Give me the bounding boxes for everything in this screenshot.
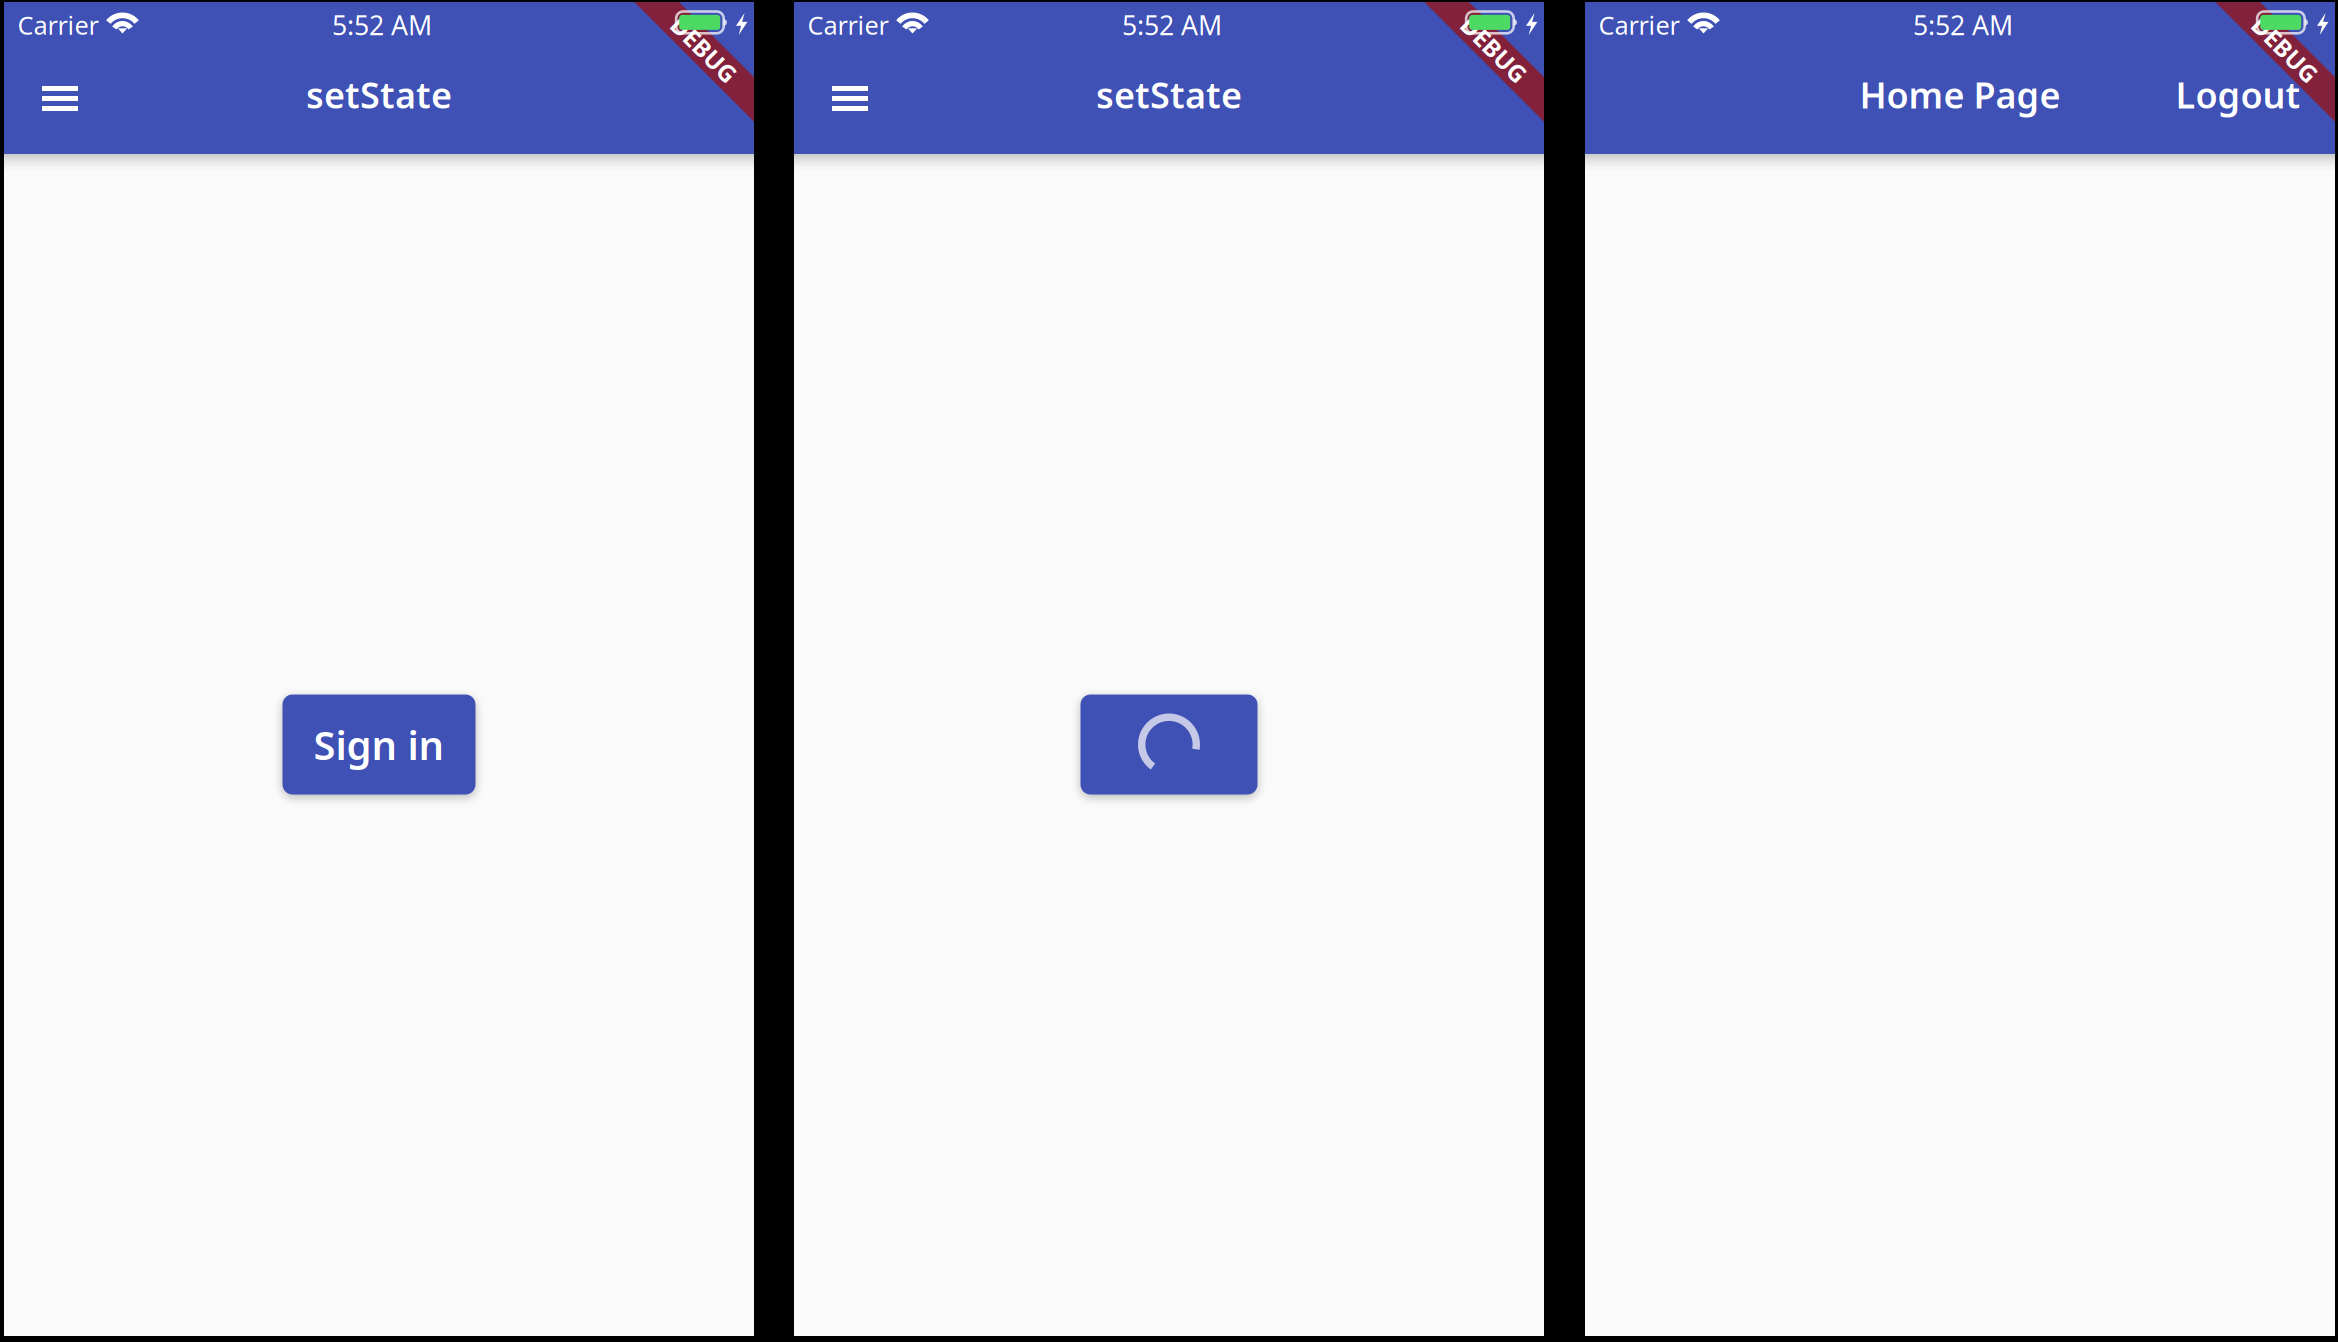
button[interactable]: Open navigation menu [12,43,108,154]
staticText: setState [306,71,452,118]
staticText: Sign in [313,718,444,771]
staticText: setState [1096,71,1242,118]
staticText: 5:52 AM [332,7,432,43]
staticText: DEBUG [662,35,744,67]
staticText: Carrier [17,8,98,42]
button[interactable]: Logout [2158,39,2318,150]
button[interactable]: Signing in [1080,694,1257,794]
staticText: Carrier [807,8,888,42]
staticText: 5:52 AM [1122,7,1222,43]
staticText: Home Page [1859,71,2060,118]
staticText: Carrier [1598,8,1679,42]
staticText: Logout [2175,71,2300,118]
staticText: 5:52 AM [1913,7,2013,43]
staticText: DEBUG [1452,35,1534,67]
staticText: DEBUG [2243,35,2325,67]
button[interactable]: Open navigation menu [802,43,898,154]
button[interactable]: Sign in [282,694,475,794]
